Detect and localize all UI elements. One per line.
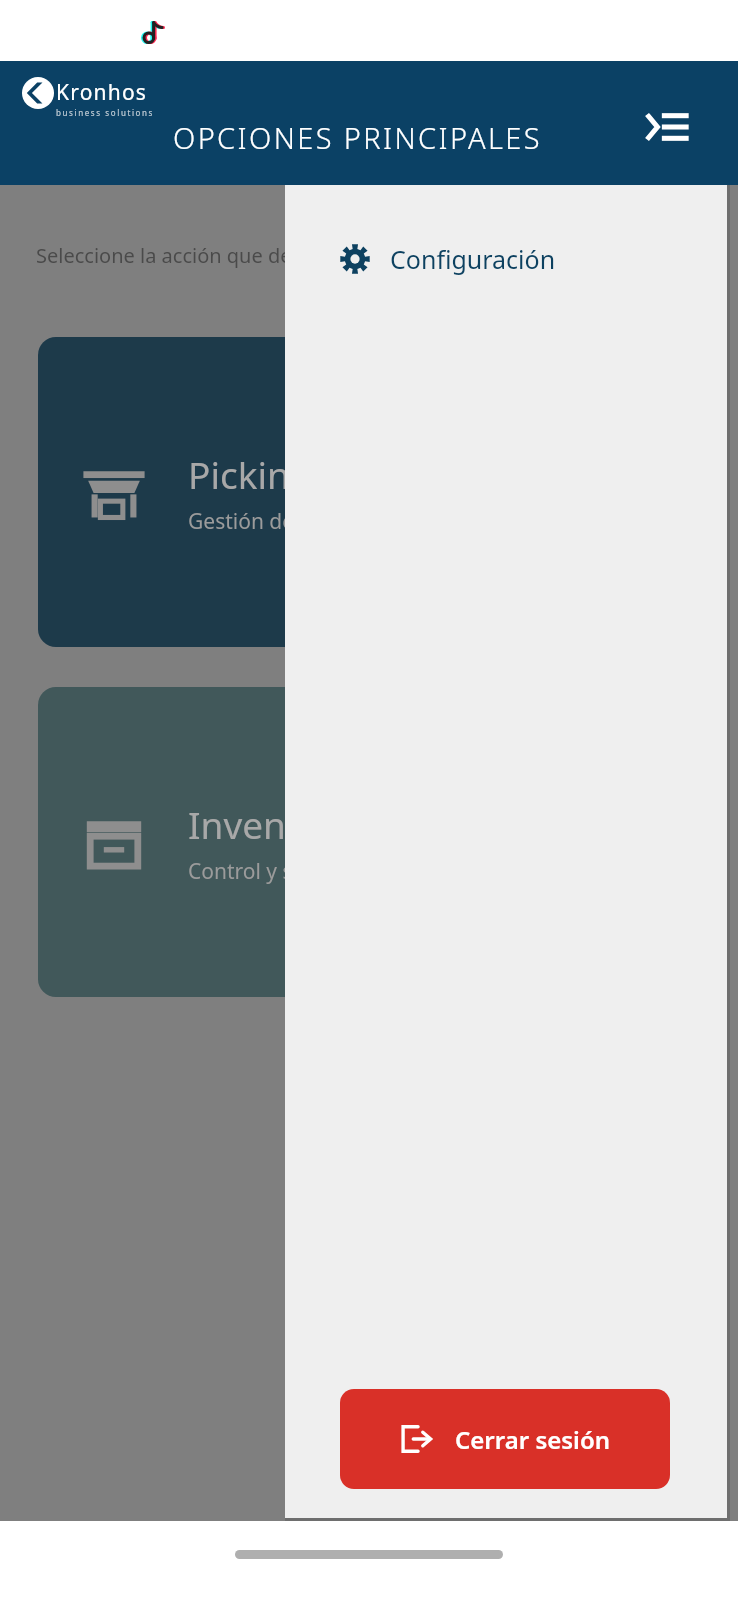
staticText: Kronhos: [56, 78, 148, 107]
staticText: business solutions: [56, 107, 155, 118]
staticText: Control y stock: [188, 857, 335, 886]
staticText: OPCIONES PRINCIPALES: [173, 118, 542, 157]
button[interactable]: Configuración: [285, 228, 727, 290]
staticText: Configuración: [390, 242, 556, 276]
staticText: Picking: [188, 449, 313, 499]
staticText: Seleccione la acción que desea realizar: [36, 242, 399, 269]
staticText: Cerrar sesión: [455, 1423, 611, 1456]
staticText: Gestión de pedidos: [188, 507, 379, 536]
button[interactable]: Picking: [38, 337, 700, 647]
button[interactable]: Abrir menú: [640, 99, 696, 155]
button[interactable]: Cerrar sesión: [340, 1389, 670, 1489]
staticText: Inventario: [188, 799, 368, 849]
button[interactable]: Inventario: [38, 687, 700, 997]
